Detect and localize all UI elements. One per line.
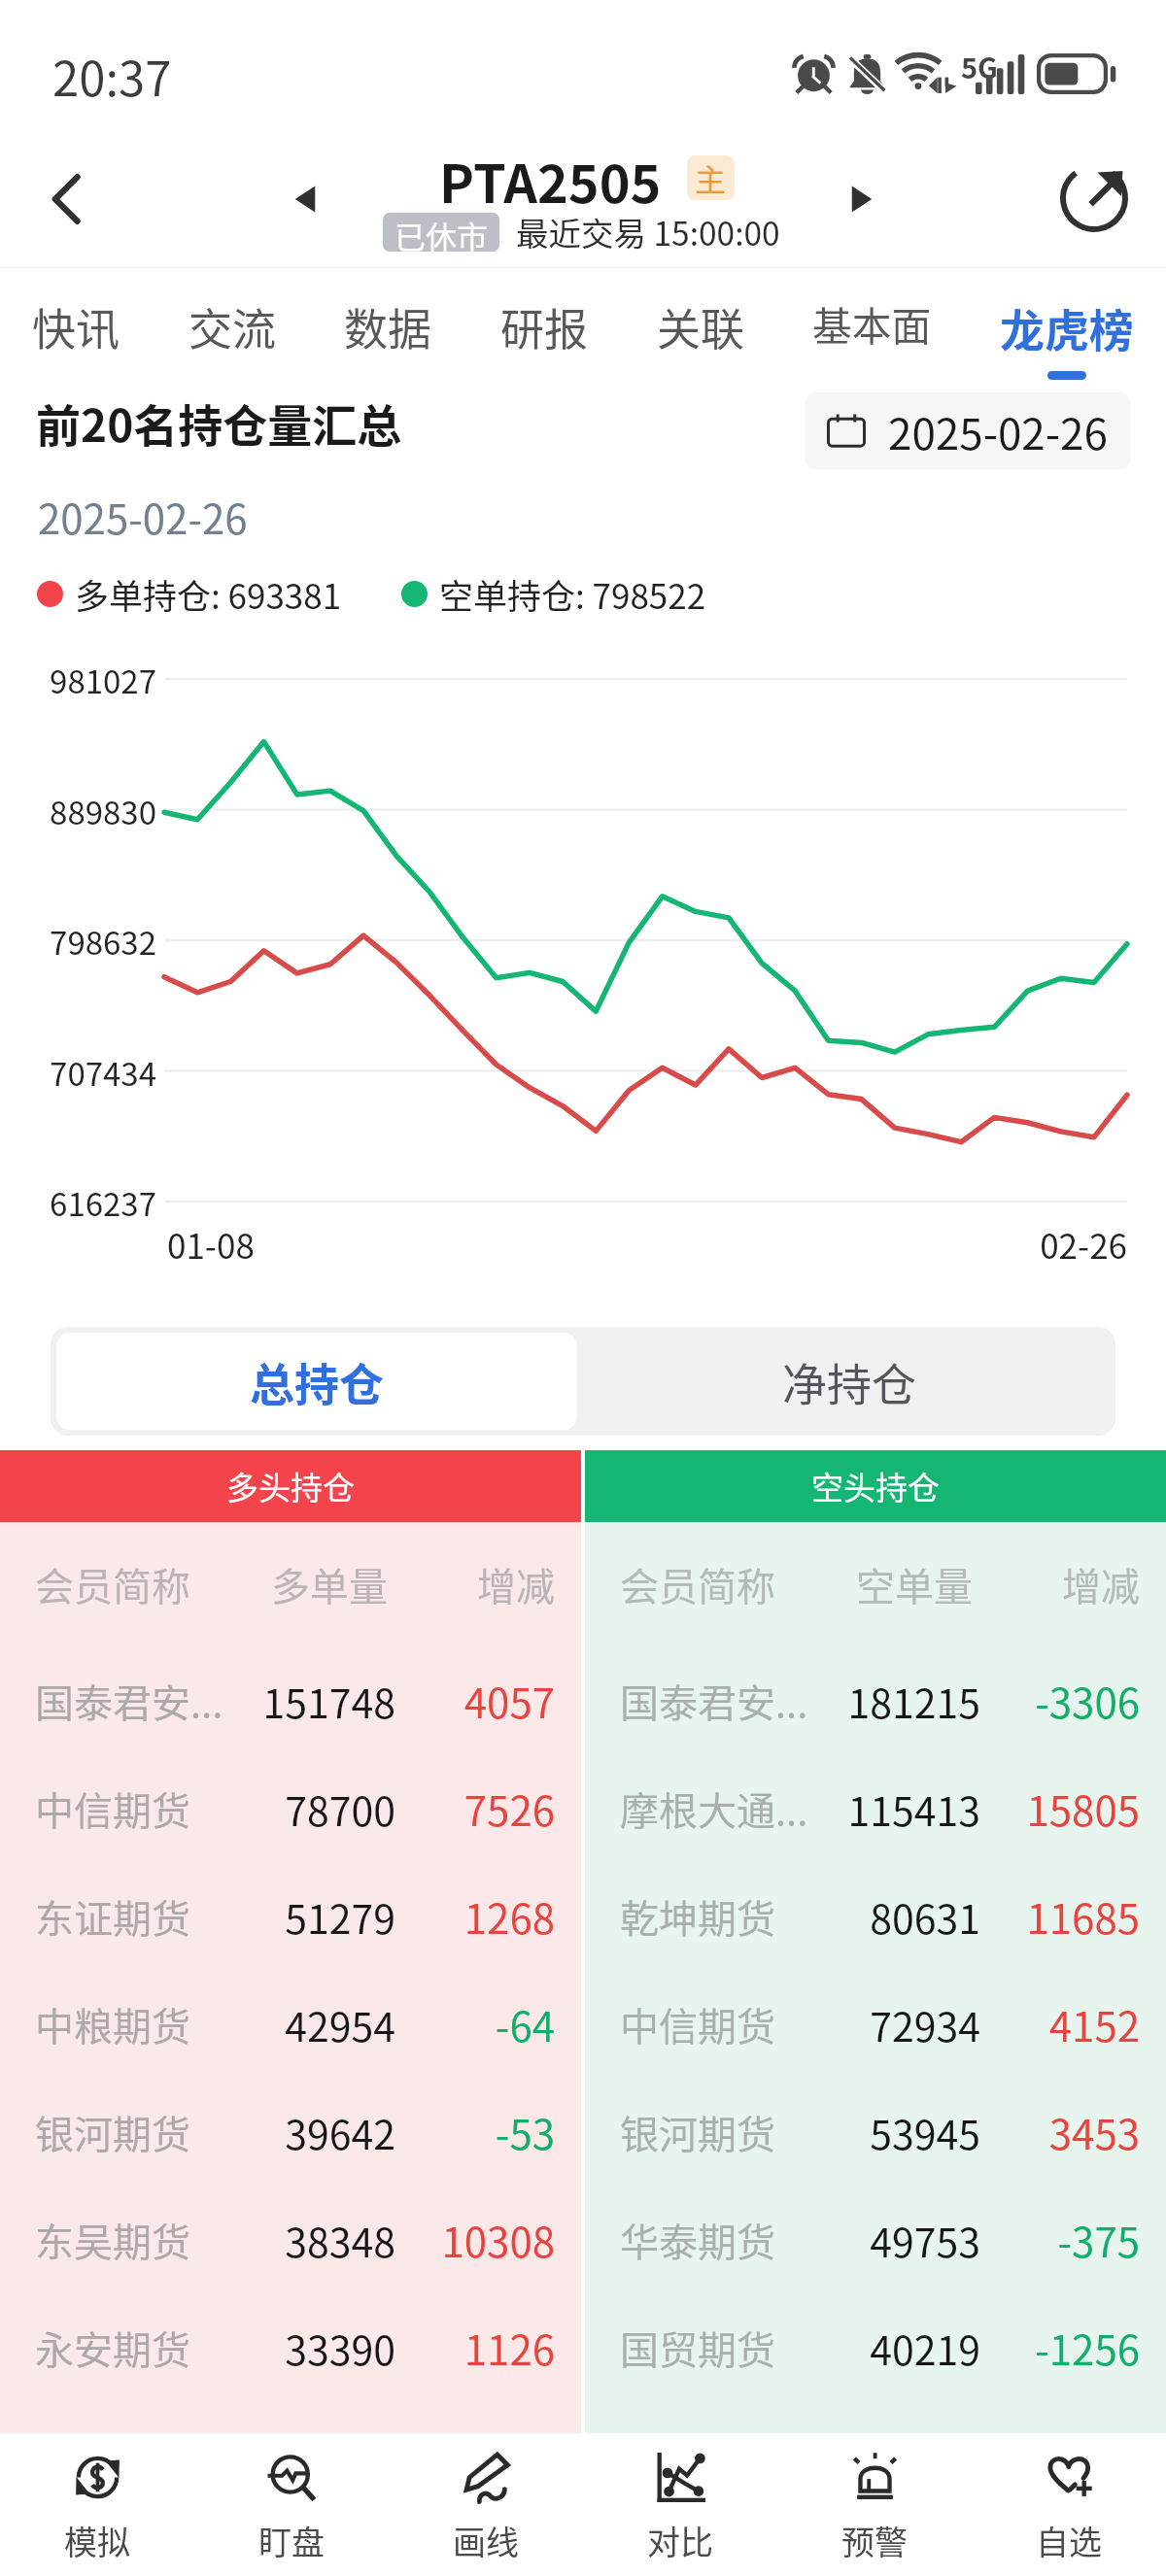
staticText: 49753 [786,2211,980,2268]
button[interactable]: 对比 [583,2433,777,2576]
staticText: 银河期货 [35,2104,190,2160]
button[interactable]: 研报 [500,268,589,389]
button[interactable]: 国泰君安... [0,1646,581,1754]
button[interactable]: 国贸期货 [585,2293,1166,2401]
button[interactable]: 银河期货 [0,2078,581,2186]
staticText: -3306 [984,1671,1140,1730]
button[interactable]: Share [1047,130,1141,268]
staticText: 80631 [786,1887,980,1945]
staticText: 国泰君安... [35,1673,223,1729]
button[interactable]: 自选 [972,2433,1166,2576]
button[interactable]: 华泰期货 [585,2186,1166,2293]
staticText: 总持仓 [250,1349,384,1414]
staticText: 4152 [984,1994,1140,2053]
staticText: -53 [399,2102,555,2161]
staticText: 东吴期货 [35,2212,190,2268]
staticText: 181215 [786,1672,980,1729]
staticText: 33390 [201,2319,395,2376]
staticText: 华泰期货 [620,2212,775,2268]
staticText: 多头持仓 [226,1463,355,1509]
staticText: 对比 [647,2517,713,2564]
button[interactable]: 数据 [344,268,432,389]
staticText: 40219 [786,2319,980,2376]
button[interactable]: 摩根大通... [585,1754,1166,1862]
staticText: 15805 [984,1779,1140,1838]
staticText: 798632 [0,918,156,965]
button[interactable]: 快讯 [32,268,120,389]
staticText: 981027 [0,657,156,703]
staticText: 2025-02-26 [888,400,1108,462]
staticText: 龙虎榜 [1000,295,1134,359]
staticText: 国贸期货 [620,2320,775,2376]
staticText: 53945 [786,2103,980,2160]
staticText: 多单量 [232,1556,388,1612]
button[interactable]: 中信期货 [585,1970,1166,2078]
staticText: 616237 [0,1179,156,1226]
button[interactable]: 中信期货 [0,1754,581,1862]
staticText: 中粮期货 [35,1996,190,2052]
button[interactable]: 盯盘 [194,2433,389,2576]
staticText: 快讯 [32,295,120,358]
staticText: -1256 [984,2318,1140,2377]
staticText: 中信期货 [620,1996,775,2052]
staticText: 空单持仓: 798522 [439,569,706,619]
staticText: 主 [695,155,727,200]
button[interactable]: 净持仓 [583,1327,1115,1436]
staticText: 增减 [984,1556,1140,1612]
button[interactable]: Next contract [823,130,901,268]
staticText: 5G [961,46,998,86]
staticText: 乾坤期货 [620,1888,775,1945]
button[interactable]: 基本面 [812,268,932,389]
staticText: 自选 [1036,2517,1102,2564]
button[interactable]: 乾坤期货 [585,1862,1166,1970]
staticText: 国泰君安... [620,1673,808,1729]
staticText: 关联 [657,295,745,358]
button[interactable]: Back [21,130,115,268]
staticText: 已休市 [394,213,489,252]
button[interactable]: 总持仓 [56,1333,577,1430]
button[interactable]: 东证期货 [0,1862,581,1970]
staticText: 115413 [786,1779,980,1837]
staticText: 空单量 [817,1556,973,1612]
staticText: 模拟 [64,2517,130,2564]
staticText: 01-08 [167,1219,255,1269]
button[interactable]: 关联 [657,268,745,389]
button[interactable]: 国泰君安... [585,1646,1166,1754]
staticText: -375 [984,2210,1140,2269]
staticText: 7526 [399,1779,555,1838]
button[interactable]: 东吴期货 [0,2186,581,2293]
staticText: 摩根大通... [620,1780,808,1837]
staticText: 研报 [500,295,589,358]
staticText: 42954 [201,1995,395,2052]
staticText: 会员简称 [620,1556,775,1612]
button[interactable]: 2025-02-26 [806,392,1130,469]
staticText: 会员简称 [35,1556,190,1612]
staticText: 前20名持仓量汇总 [36,390,402,456]
staticText: 889830 [0,788,156,834]
staticText: 基本面 [812,295,932,353]
button[interactable]: 模拟 [0,2433,194,2576]
button[interactable]: 永安期货 [0,2293,581,2401]
staticText: 空头持仓 [811,1463,940,1509]
staticText: -64 [399,1994,555,2053]
staticText: 预警 [841,2517,908,2564]
staticText: 增减 [399,1556,555,1612]
button[interactable]: 银河期货 [585,2078,1166,2186]
staticText: 盯盘 [258,2517,325,2564]
button[interactable]: Previous contract [266,130,344,268]
staticText: 10308 [399,2210,555,2269]
button[interactable]: 龙虎榜 [1000,268,1134,389]
staticText: 东证期货 [35,1888,190,1945]
staticText: 银河期货 [620,2104,775,2160]
staticText: 72934 [786,1995,980,2052]
button[interactable]: 画线 [389,2433,583,2576]
staticText: 永安期货 [35,2320,190,2376]
staticText: 02-26 [874,1219,1127,1269]
staticText: 数据 [344,295,432,358]
staticText: 4057 [399,1671,555,1730]
staticText: 78700 [201,1779,395,1837]
staticText: 51279 [201,1887,395,1945]
button[interactable]: 预警 [777,2433,972,2576]
button[interactable]: 交流 [189,268,277,389]
button[interactable]: 中粮期货 [0,1970,581,2078]
